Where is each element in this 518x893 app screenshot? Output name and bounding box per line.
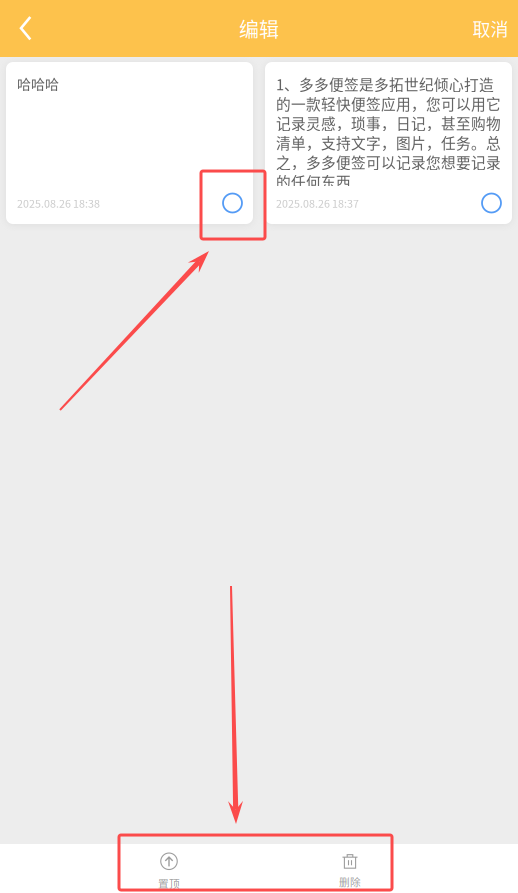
button[interactable]: Back <box>0 0 52 57</box>
button[interactable]: 哈哈哈 <box>6 62 253 224</box>
staticText: 1、多多便签是多拓世纪倾心打造 <box>276 74 494 93</box>
staticText: 置顶 <box>158 875 180 891</box>
staticText: 2025.08.26 18:37 <box>276 195 359 211</box>
staticText: 删除 <box>339 874 361 889</box>
button[interactable]: 1、多多便签是多拓世纪倾心打造 <box>265 62 512 224</box>
staticText: 取消 <box>472 15 508 42</box>
button[interactable]: 取消 <box>463 0 518 57</box>
staticText: 记录灵感，琐事，日记，甚至购物 <box>276 113 501 133</box>
staticText: 2025.08.26 18:38 <box>17 195 100 211</box>
staticText: 哈哈哈 <box>17 74 59 93</box>
staticText: 之，多多便签可以记录您想要记录 <box>276 152 501 172</box>
button[interactable]: 删除 <box>305 844 395 893</box>
staticText: 编辑 <box>239 14 279 43</box>
staticText: 清单，支持文字，图片，任务。总 <box>276 133 501 152</box>
staticText: 的任何东西 <box>276 172 351 191</box>
staticText: 的一款轻快便签应用，您可以用它 <box>276 93 501 113</box>
button[interactable]: 置顶 <box>124 844 214 893</box>
